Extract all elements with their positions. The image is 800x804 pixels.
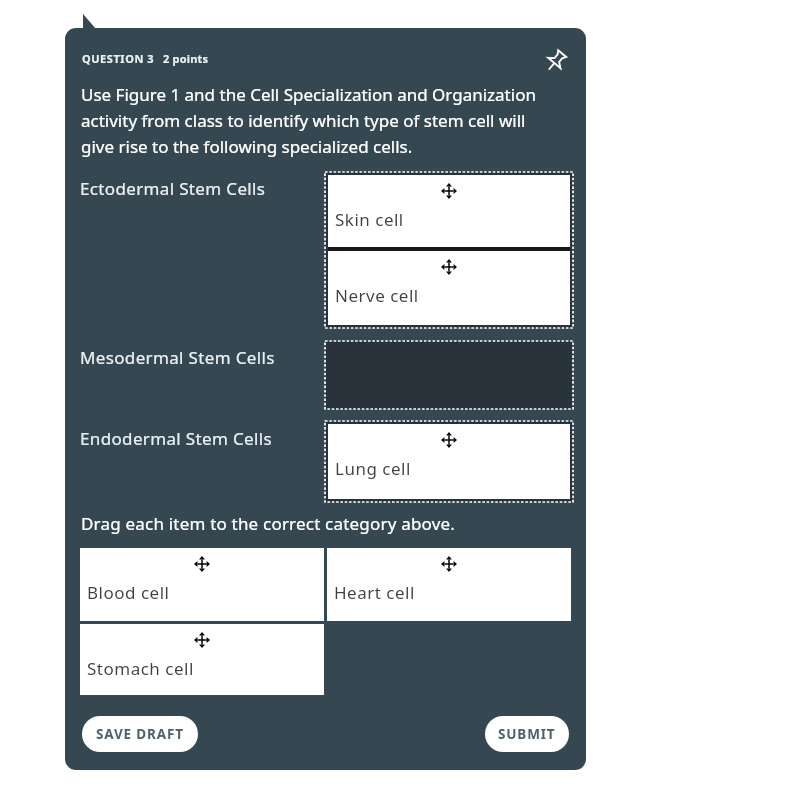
staticText: Mesodermal Stem Cells [80,346,275,369]
button[interactable]: Heart cell [327,548,571,621]
staticText: Use Figure 1 and the Cell Specialization… [81,83,551,158]
button[interactable]: SUBMIT [485,716,569,752]
button[interactable]: Stomach cell [80,624,324,695]
staticText: Ectodermal Stem Cells [80,177,266,200]
button[interactable]: SAVE DRAFT [82,716,198,752]
button[interactable]: Blood cell [80,548,324,621]
staticText: Endodermal Stem Cells [80,427,272,450]
staticText: SAVE DRAFT [96,725,184,743]
staticText: Stomach cell [87,657,194,680]
button[interactable]: Nerve cell [328,251,570,325]
staticText: Blood cell [87,581,170,604]
staticText: Drag each item to the correct category a… [81,512,456,535]
staticText: Lung cell [335,457,411,480]
staticText: 2 points [163,51,209,66]
button[interactable]: Skin cell [328,175,570,247]
staticText: QUESTION 3 [82,51,155,66]
staticText: SUBMIT [498,725,556,743]
button[interactable]: Lung cell [328,424,570,499]
staticText: Skin cell [335,208,404,231]
staticText: Heart cell [334,581,415,604]
button[interactable]: Pin question [541,46,571,76]
staticText: Nerve cell [335,284,419,307]
